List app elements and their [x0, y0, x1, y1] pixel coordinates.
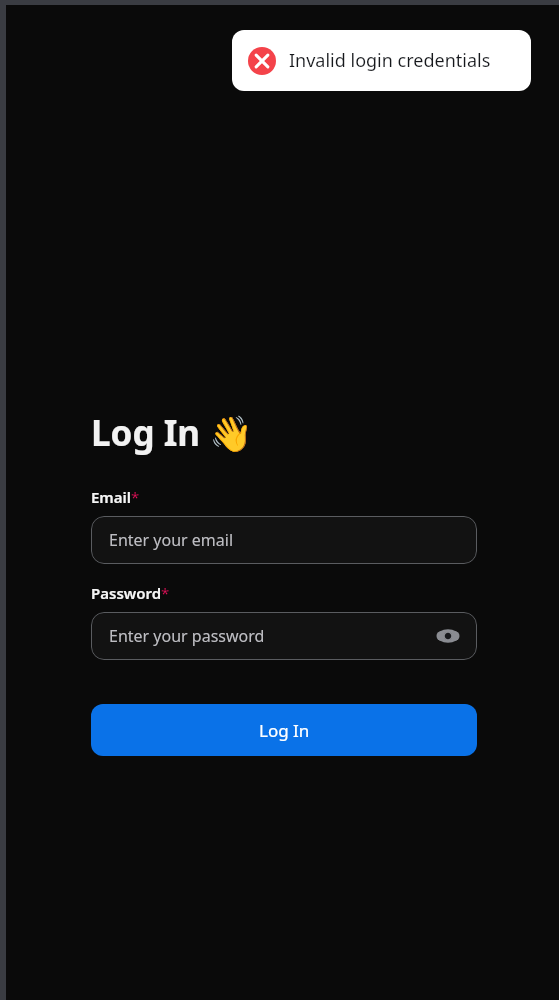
button[interactable]: Show password — [433, 621, 463, 651]
staticText: Email* — [91, 487, 140, 507]
staticText: Log In 👋 — [91, 409, 253, 457]
button[interactable]: Log In — [91, 704, 477, 756]
staticText: Enter your password — [109, 625, 433, 647]
button[interactable]: Enter your password — [91, 612, 477, 660]
staticText: Enter your email — [109, 529, 234, 551]
staticText: Invalid login credentials — [289, 48, 491, 73]
button[interactable]: Invalid login credentials — [232, 30, 531, 91]
staticText: Password* — [91, 583, 170, 603]
staticText: Log In — [259, 719, 310, 742]
button[interactable]: Enter your email — [91, 516, 477, 564]
